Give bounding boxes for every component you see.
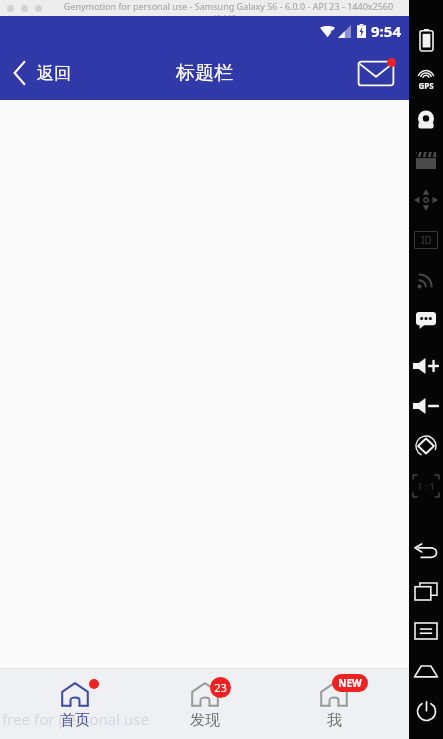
staticText: NEW (338, 676, 362, 690)
button[interactable]: Emulator control (409, 571, 443, 611)
button[interactable]: Emulator control (409, 180, 443, 220)
staticText: free for personal use (2, 709, 149, 729)
staticText: 1 : 1 (417, 480, 435, 492)
staticText: 发现 (190, 711, 220, 730)
button[interactable]: Emulator control (409, 100, 443, 140)
staticText: 标题栏 (176, 61, 233, 85)
button[interactable]: Emulator control (409, 651, 443, 691)
staticText: GPS (418, 80, 434, 91)
staticText: 我 (327, 711, 342, 730)
button[interactable]: Emulator control (409, 60, 443, 100)
button[interactable]: Messages (343, 46, 409, 100)
button[interactable]: Emulator control (409, 531, 443, 571)
button[interactable]: Emulator control (409, 386, 443, 426)
staticText: ID (421, 233, 432, 247)
button[interactable]: Emulator control (409, 426, 443, 466)
staticText: 返回 (37, 63, 71, 84)
button[interactable]: 返回 (0, 46, 85, 100)
button[interactable]: Emulator control (409, 300, 443, 340)
button[interactable]: Emulator control (409, 260, 443, 300)
button[interactable]: Emulator control (409, 691, 443, 731)
button[interactable]: 23 (150, 669, 260, 739)
button[interactable]: Emulator control (409, 466, 443, 506)
button[interactable]: Emulator control (409, 346, 443, 386)
button[interactable]: Emulator control (409, 611, 443, 651)
staticText: 首页 (60, 711, 90, 730)
button[interactable]: Emulator control (409, 20, 443, 60)
button[interactable]: 首页 (20, 669, 130, 739)
button[interactable]: Emulator control (409, 140, 443, 180)
button[interactable]: NEW (279, 669, 389, 739)
button[interactable]: Emulator control (409, 220, 443, 260)
staticText: 9:54 (371, 21, 401, 41)
staticText: Genymotion for personal use - Samsung Ga… (48, 0, 409, 16)
staticText: 23 (214, 680, 227, 695)
